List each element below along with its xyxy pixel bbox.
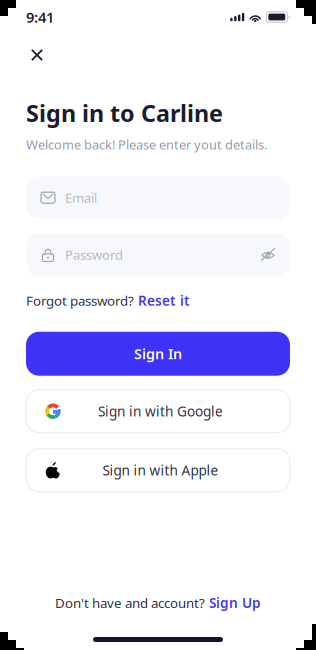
button[interactable]: Reset it (134, 291, 190, 310)
staticText: Sign in with Apple (102, 461, 218, 479)
staticText: Reset it (138, 291, 190, 310)
staticText: Email (65, 189, 97, 207)
button[interactable]: Sign in with Apple (26, 449, 290, 492)
button[interactable]: Sign In (26, 332, 290, 376)
staticText: Forgot password? (26, 291, 134, 310)
staticText: 9:41 (26, 7, 54, 27)
staticText: Password (65, 246, 123, 264)
staticText: Don't have and account? (55, 594, 205, 612)
staticText: Sign In (134, 344, 182, 363)
staticText: Sign in to Carline (26, 97, 223, 129)
staticText: Welcome back! Please enter yout details. (26, 136, 267, 153)
staticText: Sign Up (209, 593, 261, 612)
button[interactable]: Sign Up (205, 593, 261, 612)
button[interactable]: Close (21, 39, 53, 71)
staticText: Sign in with Google (98, 402, 223, 420)
button[interactable]: Sign in with Google (26, 390, 290, 433)
